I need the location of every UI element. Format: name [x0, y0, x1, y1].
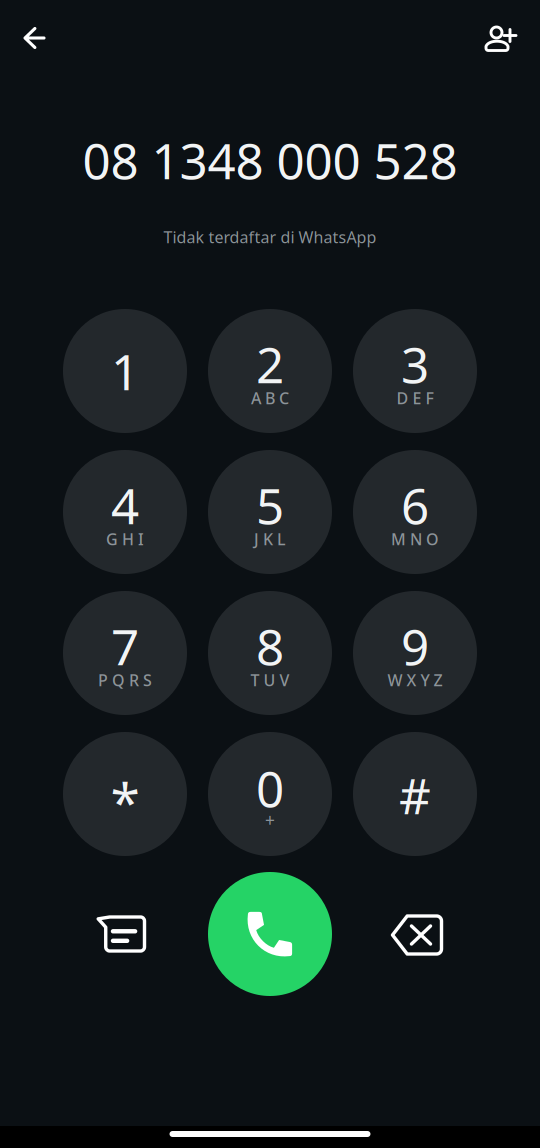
staticText: A B C	[251, 387, 289, 409]
staticText: 8	[256, 613, 284, 679]
button[interactable]: 6	[353, 450, 477, 574]
button[interactable]: Back	[6, 10, 62, 66]
button[interactable]: 1	[63, 309, 187, 433]
button[interactable]: 3	[353, 309, 477, 433]
button[interactable]: 9	[353, 591, 477, 715]
staticText: 3	[401, 331, 429, 397]
staticText: 6	[401, 472, 429, 538]
button[interactable]: 5	[208, 450, 332, 574]
staticText: #	[399, 762, 431, 828]
staticText: G H I	[106, 528, 144, 550]
button[interactable]: *	[63, 732, 187, 856]
staticText: Tidak terdaftar di WhatsApp	[163, 226, 376, 248]
staticText: W X Y Z	[387, 669, 442, 691]
button[interactable]: 8	[208, 591, 332, 715]
button[interactable]: Delete	[369, 887, 465, 983]
staticText: T U V	[250, 669, 289, 691]
button[interactable]: 7	[63, 591, 187, 715]
button[interactable]: #	[353, 732, 477, 856]
button[interactable]: 4	[63, 450, 187, 574]
staticText: 9	[401, 613, 429, 679]
button[interactable]: Call	[208, 872, 332, 996]
staticText: 4	[111, 472, 139, 538]
staticText: 0	[256, 755, 284, 821]
staticText: *	[110, 766, 139, 836]
button[interactable]: Add contact	[473, 9, 529, 65]
staticText: J K L	[254, 528, 286, 550]
staticText: 2	[256, 331, 284, 397]
staticText: 1	[111, 338, 139, 404]
staticText: 7	[111, 613, 139, 679]
staticText: +	[265, 808, 275, 831]
staticText: 08 1348 000 528	[82, 127, 457, 193]
staticText: 5	[256, 472, 284, 538]
button[interactable]: 0	[208, 732, 332, 856]
staticText: P Q R S	[98, 669, 152, 691]
staticText: D E F	[396, 387, 433, 409]
button[interactable]: 2	[208, 309, 332, 433]
staticText: M N O	[391, 528, 439, 550]
button[interactable]: Message	[73, 886, 169, 982]
